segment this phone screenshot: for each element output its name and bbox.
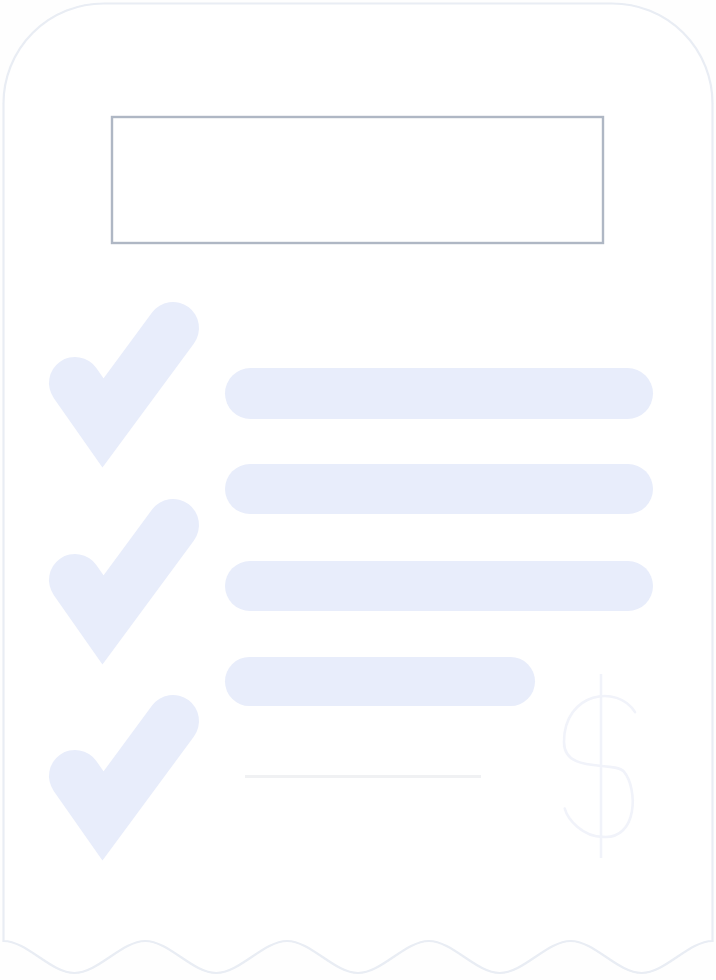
button[interactable]: Checklist receipt illustration: [0, 0, 716, 980]
